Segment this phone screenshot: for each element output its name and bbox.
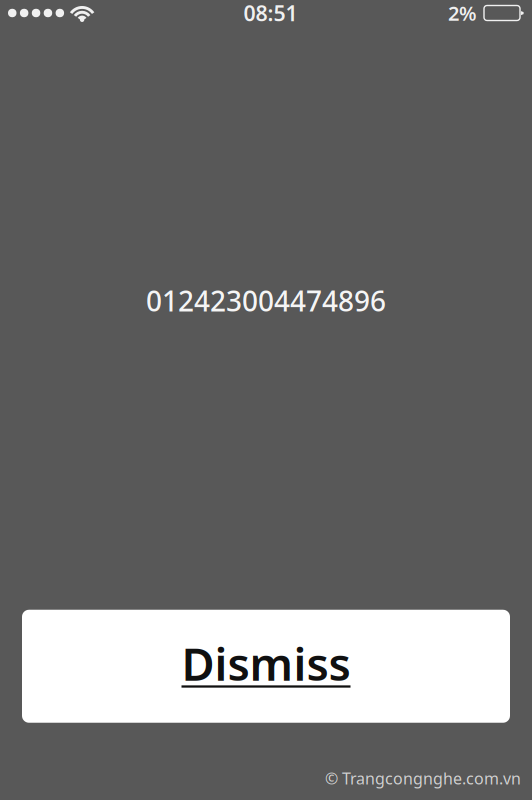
staticText: © Trangcongnghe.com.vn [325,768,521,789]
button[interactable]: Dismiss [22,610,510,723]
staticText: 012423004474896 [146,282,386,319]
staticText: 2% [448,0,477,26]
staticText: 08:51 [243,0,297,27]
staticText: Dismiss [181,633,350,693]
